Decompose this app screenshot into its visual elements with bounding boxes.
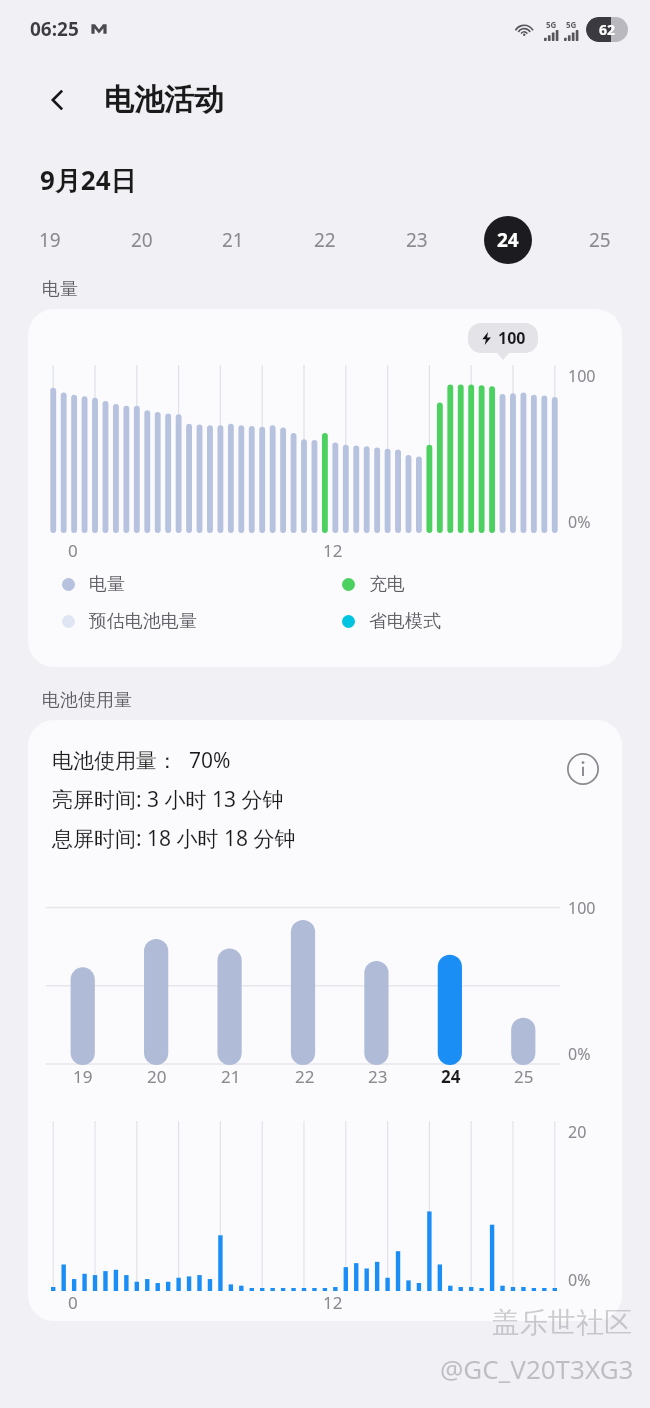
staticText: 19 <box>39 227 61 253</box>
staticText: 62 <box>599 20 616 39</box>
staticText: 电池活动 <box>104 81 224 119</box>
staticText: 12 <box>323 539 343 562</box>
button[interactable]: 100 <box>28 309 622 667</box>
staticText: 息屏时间: 18 小时 18 分钟 <box>52 824 296 853</box>
button[interactable]: Back <box>34 76 82 124</box>
staticText: 20 <box>147 1065 167 1088</box>
staticText: 22 <box>314 227 336 253</box>
staticText: 电量 <box>42 278 78 301</box>
staticText: 0% <box>568 1269 591 1291</box>
staticText: 22 <box>295 1065 315 1088</box>
button[interactable]: 电池使用量： 70% <box>28 720 622 1321</box>
button[interactable]: 25 <box>576 216 624 264</box>
staticText: 0% <box>568 1043 591 1065</box>
staticText: 9月24日 <box>40 162 137 198</box>
staticText: 20 <box>131 227 153 253</box>
staticText: 电池使用量： 70% <box>52 746 231 775</box>
staticText: 21 <box>222 227 244 253</box>
staticText: 100 <box>568 897 596 919</box>
button[interactable]: 21 <box>209 216 257 264</box>
staticText: 充电 <box>369 573 405 596</box>
staticText: @GC_V20T3XG3 <box>440 1351 634 1386</box>
staticText: 0 <box>68 1291 78 1314</box>
button[interactable]: 22 <box>301 216 349 264</box>
staticText: 24 <box>497 227 519 253</box>
staticText: 省电模式 <box>369 610 441 633</box>
staticText: 25 <box>514 1065 534 1088</box>
staticText: 24 <box>441 1065 461 1088</box>
button[interactable]: 23 <box>393 216 441 264</box>
staticText: 21 <box>221 1065 241 1088</box>
button[interactable]: 20 <box>118 216 166 264</box>
staticText: 5G <box>546 19 557 30</box>
staticText: 电池使用量 <box>42 689 132 712</box>
staticText: 06:25 <box>30 16 79 42</box>
staticText: 19 <box>73 1065 93 1088</box>
staticText: 0% <box>568 511 591 533</box>
staticText: 盖乐世社区 <box>492 1305 632 1340</box>
staticText: 0 <box>68 539 78 562</box>
staticText: 5G <box>566 19 577 30</box>
staticText: 100 <box>498 327 526 349</box>
staticText: 23 <box>368 1065 388 1088</box>
button[interactable]: 24 <box>484 216 532 264</box>
staticText: 23 <box>406 227 428 253</box>
staticText: 预估电池电量 <box>89 610 197 633</box>
button[interactable]: 19 <box>26 216 74 264</box>
staticText: 亮屏时间: 3 小时 13 分钟 <box>52 785 284 814</box>
staticText: 12 <box>323 1291 343 1314</box>
button[interactable]: Info <box>560 746 606 792</box>
staticText: 100 <box>568 365 596 387</box>
staticText: 电量 <box>89 573 125 596</box>
staticText: 25 <box>589 227 611 253</box>
staticText: 20 <box>568 1121 587 1143</box>
